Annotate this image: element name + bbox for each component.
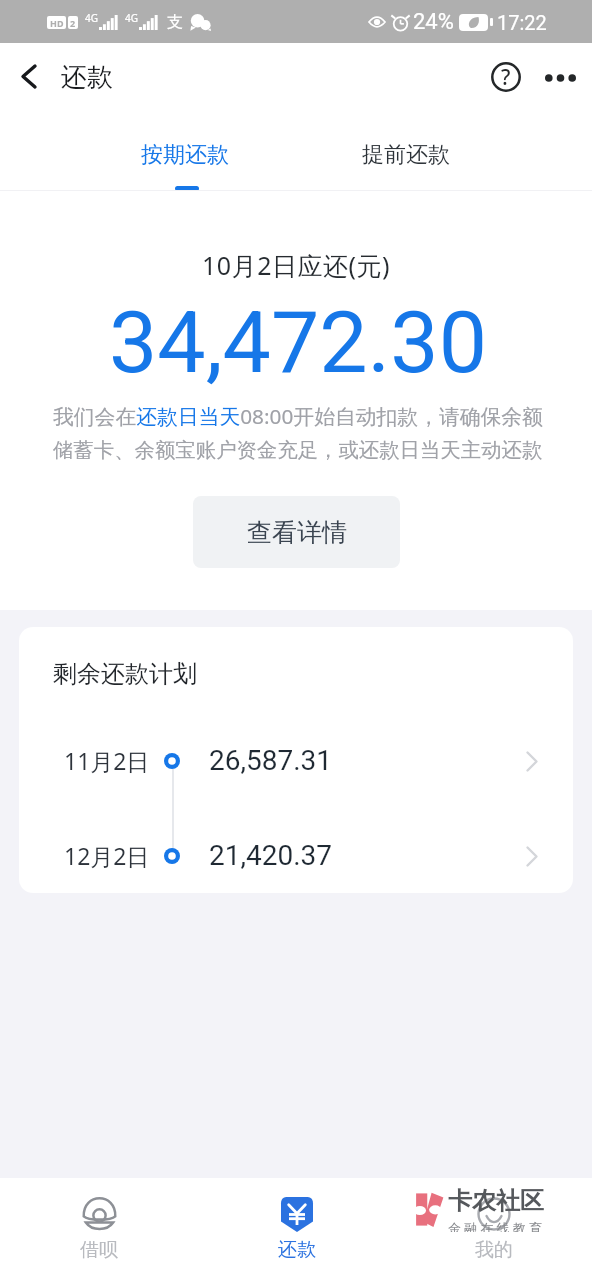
staticText: 34,472.30 <box>2 292 592 393</box>
button[interactable]: 查看详情 <box>193 496 400 568</box>
staticText: 4G <box>125 11 138 25</box>
button[interactable]: Back <box>0 43 58 109</box>
staticText: 按期还款 <box>141 141 229 169</box>
button[interactable]: 我的 <box>395 1178 592 1280</box>
button[interactable]: 按期还款 <box>120 109 250 191</box>
staticText: 21,420.37 <box>209 839 333 872</box>
staticText: 提前还款 <box>362 141 450 169</box>
button[interactable]: More options <box>532 50 588 106</box>
staticText: 26,587.31 <box>209 744 333 777</box>
button[interactable]: Help <box>478 49 534 105</box>
staticText: 卡农社区 <box>448 1186 544 1216</box>
button[interactable]: 11月2日 <box>19 733 573 789</box>
staticText: 还款 <box>278 1238 316 1262</box>
staticText: 借呗 <box>80 1238 118 1262</box>
staticText: 11月2日 <box>64 745 150 776</box>
staticText: 剩余还款计划 <box>53 659 197 689</box>
staticText: HD <box>50 17 64 29</box>
staticText: 支 <box>167 12 183 32</box>
staticText: 储蓄卡、余额宝账户资金充足，或还款日当天主动还款 <box>53 437 543 463</box>
staticText: 24% <box>413 9 454 35</box>
staticText: 4G <box>85 11 98 25</box>
button[interactable]: 12月2日 <box>19 828 573 884</box>
staticText: 我的 <box>475 1238 513 1262</box>
staticText: 查看详情 <box>247 517 347 548</box>
button[interactable]: 提前还款 <box>341 109 471 191</box>
staticText: 10月2日应还(元) <box>0 248 592 282</box>
staticText: 我们会在还款日当天08:00开始自动扣款，请确保余额 <box>53 402 543 430</box>
staticText: 12月2日 <box>64 840 150 871</box>
staticText: 还款 <box>61 61 113 94</box>
staticText: 2 <box>70 17 76 29</box>
button[interactable]: 借呗 <box>0 1178 198 1280</box>
button[interactable]: 还款 <box>198 1178 395 1280</box>
staticText: 17:22 <box>497 11 547 34</box>
staticText: ? <box>501 63 511 92</box>
staticText: 金融在线教育 <box>448 1220 546 1232</box>
